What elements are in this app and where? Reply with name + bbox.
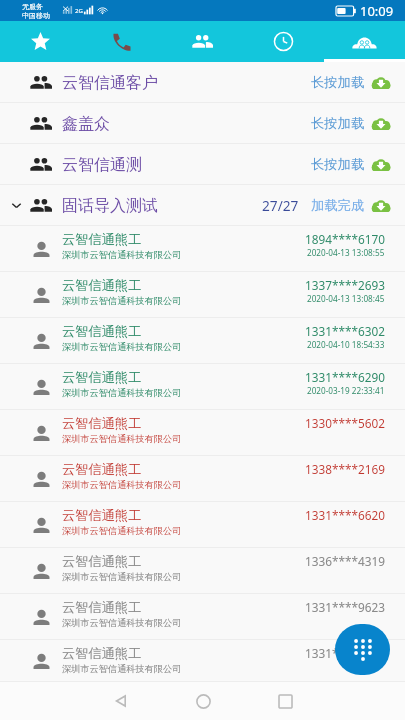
button[interactable]: 固话导入测试 <box>0 185 405 226</box>
staticText: 1331****6620 <box>305 507 385 523</box>
staticText: 鑫盖众 <box>62 114 110 134</box>
button[interactable]: 云智信通熊工 <box>0 226 405 272</box>
staticText: 2G <box>75 7 83 15</box>
staticText: 长按加载 <box>311 74 365 91</box>
staticText: 1338****2169 <box>305 461 385 477</box>
staticText: 1331****6290 <box>305 369 385 385</box>
staticText: 中国移动 <box>22 11 50 20</box>
staticText: 云智信通熊工 <box>62 645 142 662</box>
staticText: 云智信通熊工 <box>62 599 142 616</box>
staticText: 云智信通客户 <box>62 73 158 93</box>
staticText: 深圳市云智信通科技有限公司 <box>62 663 182 675</box>
button[interactable]: 云智信通熊工 <box>0 272 405 318</box>
staticText: 云智信通熊工 <box>62 277 142 294</box>
button[interactable]: 云智信通熊工 <box>0 640 405 682</box>
button[interactable]: Cloud contacts <box>324 21 405 62</box>
staticText: 1330****5602 <box>305 415 385 431</box>
staticText: 云智信通熊工 <box>62 553 142 570</box>
button[interactable]: Back <box>91 682 151 720</box>
button[interactable]: 云智信通熊工 <box>0 548 405 594</box>
button[interactable]: Dialpad <box>335 624 390 675</box>
staticText: 2020-03-19 22:33:41 <box>307 385 385 396</box>
staticText: 1337****2693 <box>305 277 385 293</box>
staticText: 深圳市云智信通科技有限公司 <box>62 295 182 307</box>
staticText: 云智信通熊工 <box>62 323 142 340</box>
staticText: 长按加载 <box>311 156 365 173</box>
button[interactable]: Favourites <box>0 21 81 62</box>
button[interactable]: Home <box>173 682 233 720</box>
staticText: 深圳市云智信通科技有限公司 <box>62 571 182 583</box>
staticText: 加载完成 <box>311 197 365 214</box>
staticText: 深圳市云智信通科技有限公司 <box>62 341 182 353</box>
staticText: 固话导入测试 <box>62 196 158 216</box>
button[interactable]: History <box>243 21 324 62</box>
staticText: 深圳市云智信通科技有限公司 <box>62 479 182 491</box>
staticText: 深圳市云智信通科技有限公司 <box>62 433 182 445</box>
button[interactable]: Contacts <box>162 21 243 62</box>
staticText: 1894****6170 <box>305 231 385 247</box>
staticText: 1336****4319 <box>305 553 385 569</box>
staticText: 27/27 <box>262 196 299 215</box>
staticText: 深圳市云智信通科技有限公司 <box>62 525 182 537</box>
staticText: 2020-04-13 13:08:55 <box>307 247 385 258</box>
staticText: 云智信通测 <box>62 155 142 175</box>
staticText: 云智信通熊工 <box>62 369 142 386</box>
button[interactable]: Recents <box>255 682 315 720</box>
button[interactable]: 云智信通熊工 <box>0 594 405 640</box>
staticText: 云智信通熊工 <box>62 415 142 432</box>
staticText: 2020-04-13 13:08:45 <box>307 293 385 304</box>
button[interactable]: 云智信通熊工 <box>0 456 405 502</box>
button[interactable]: Dialer <box>81 21 162 62</box>
staticText: 1331****6302 <box>305 323 385 339</box>
button[interactable]: 鑫盖众 <box>0 103 405 144</box>
button[interactable]: 云智信通客户 <box>0 62 405 103</box>
button[interactable]: 云智信通熊工 <box>0 502 405 548</box>
staticText: 1331****9623 <box>305 599 385 615</box>
staticText: 10:09 <box>360 2 394 20</box>
button[interactable]: 云智信通熊工 <box>0 318 405 364</box>
staticText: 云智信通熊工 <box>62 507 142 524</box>
staticText: 无服务 <box>22 2 43 11</box>
staticText: 云智信通熊工 <box>62 231 142 248</box>
staticText: 云智信通熊工 <box>62 461 142 478</box>
staticText: 2020-04-10 18:54:33 <box>307 339 385 350</box>
staticText: 深圳市云智信通科技有限公司 <box>62 387 182 399</box>
staticText: 深圳市云智信通科技有限公司 <box>62 249 182 261</box>
button[interactable]: 云智信通熊工 <box>0 364 405 410</box>
staticText: 深圳市云智信通科技有限公司 <box>62 617 182 629</box>
button[interactable]: 云智信通熊工 <box>0 410 405 456</box>
staticText: 1331****1111 <box>305 645 385 661</box>
staticText: 长按加载 <box>311 115 365 132</box>
button[interactable]: 云智信通测 <box>0 144 405 185</box>
